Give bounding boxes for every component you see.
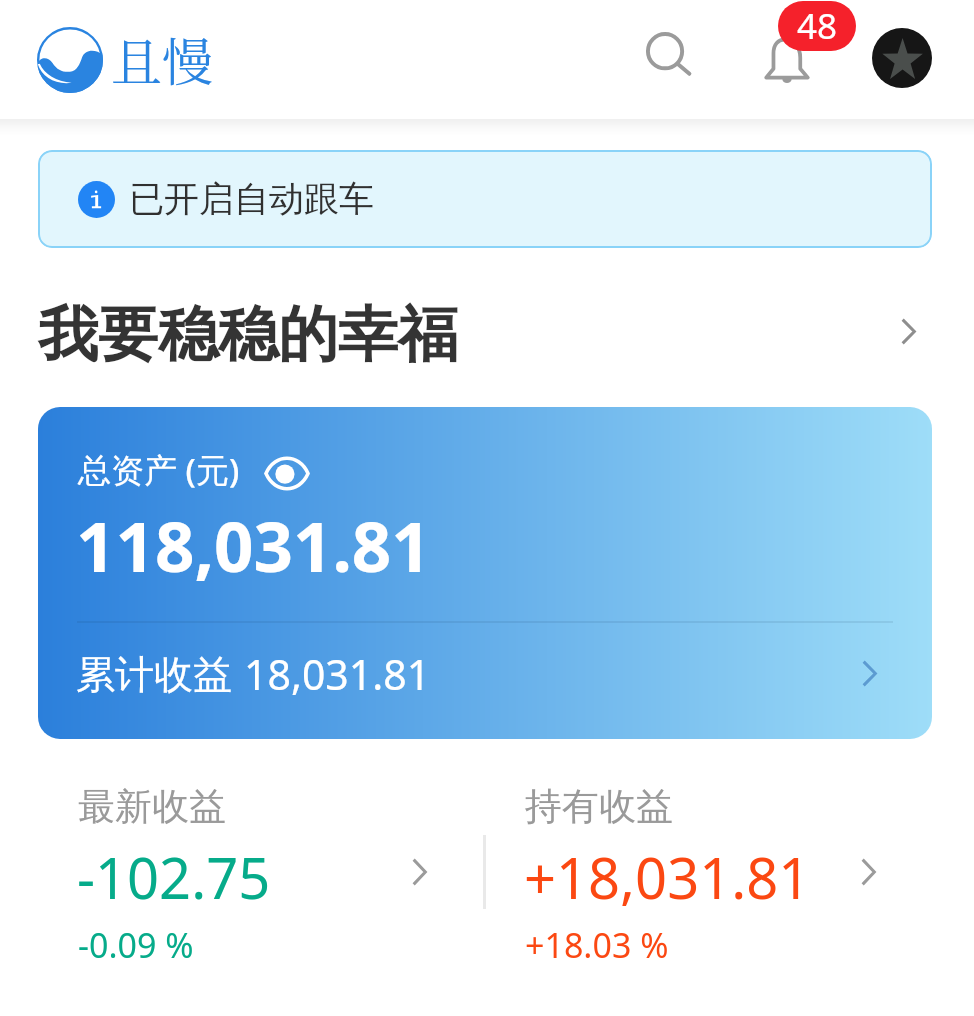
staticText: 总资产 (元) [78, 447, 240, 492]
button[interactable]: Profile [872, 28, 932, 88]
button[interactable]: Notifications [752, 27, 822, 97]
button[interactable]: 最新收益 [40, 770, 460, 980]
button[interactable]: 48 notifications [778, 1, 856, 51]
staticText: 最新收益 [78, 783, 226, 830]
staticText: -102.75 [77, 839, 271, 915]
staticText: +18,031.81 [524, 839, 811, 915]
staticText: 累计收益 [76, 650, 232, 699]
button[interactable]: Search [637, 22, 707, 92]
staticText: 已开启自动跟车 [129, 177, 374, 221]
button[interactable]: 总资产 (元) [38, 407, 932, 739]
staticText: 118,031.81 [76, 498, 431, 592]
button[interactable]: 已开启自动跟车 [38, 150, 932, 248]
staticText: 18,031.81 [244, 646, 431, 702]
button[interactable]: 持有收益 [487, 770, 907, 980]
staticText: 持有收益 [525, 783, 673, 830]
staticText: +18.03 % [525, 922, 669, 968]
staticText: -0.09 % [78, 922, 194, 968]
staticText: 我要稳稳的幸福 [38, 297, 458, 373]
button[interactable]: 且慢 home [37, 18, 213, 102]
button[interactable]: 我要稳稳的幸福 [0, 285, 974, 377]
staticText: 48 [797, 2, 838, 50]
staticText: 且慢 [111, 22, 214, 95]
